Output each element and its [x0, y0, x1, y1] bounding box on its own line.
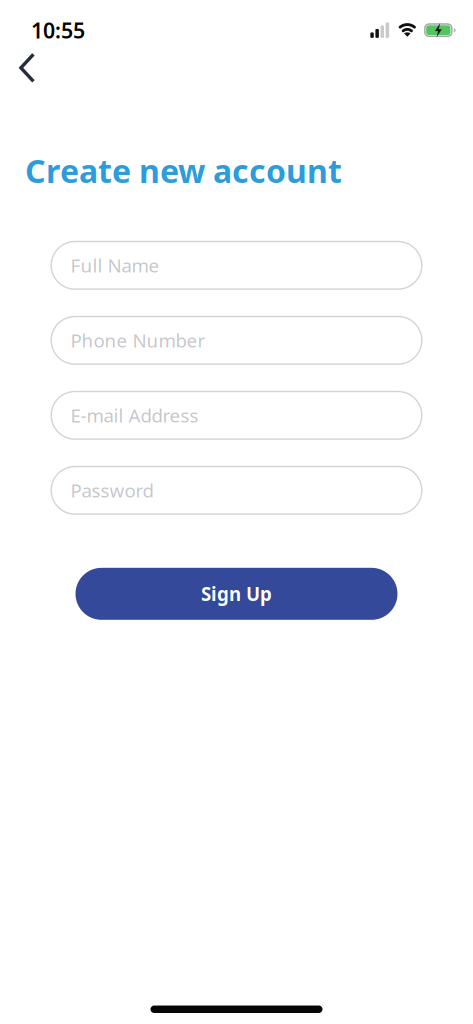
button[interactable]: Sign Up [75, 568, 397, 620]
button[interactable]: E-mail Address [50, 391, 422, 440]
button[interactable]: Full Name [50, 241, 422, 290]
button[interactable]: Phone Number [50, 316, 422, 365]
button[interactable]: Password [50, 466, 422, 515]
staticText: Phone Number [70, 328, 205, 353]
button[interactable]: Back [0, 52, 49, 83]
staticText: Full Name [70, 253, 159, 278]
staticText: E-mail Address [70, 403, 198, 428]
staticText: Sign Up [201, 581, 272, 606]
staticText: Password [70, 478, 153, 503]
staticText: Create new account [25, 149, 342, 192]
staticText: 10:55 [31, 16, 85, 44]
